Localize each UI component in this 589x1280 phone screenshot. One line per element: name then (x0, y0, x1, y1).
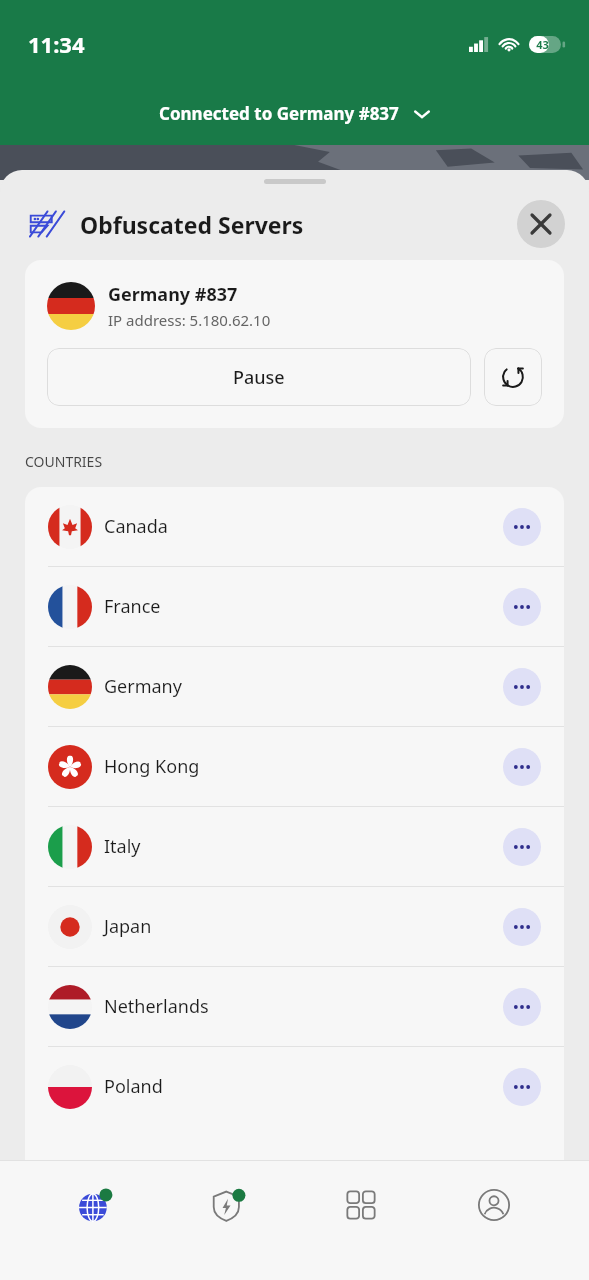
button[interactable]: More options for Hong Kong (503, 748, 541, 786)
staticText: Pause (233, 365, 285, 390)
staticText: Canada (104, 514, 168, 539)
button[interactable]: More options for Italy (503, 828, 541, 866)
button[interactable]: Tools (323, 1167, 399, 1243)
button[interactable]: More options for Canada (503, 508, 541, 546)
button[interactable]: Canada (25, 487, 564, 566)
button[interactable]: Italy (25, 807, 564, 886)
button[interactable]: Threat Protection (190, 1167, 266, 1243)
button[interactable]: Netherlands (25, 967, 564, 1046)
button[interactable]: Pause (47, 348, 471, 406)
staticText: Poland (104, 1074, 163, 1099)
staticText: Connected to Germany #837 (159, 102, 399, 125)
staticText: Germany #837 (108, 282, 238, 307)
button[interactable]: Reconnect (484, 348, 542, 406)
button[interactable]: Japan (25, 887, 564, 966)
button[interactable]: Close (517, 200, 565, 248)
button[interactable]: France (25, 567, 564, 646)
staticText: 43 (536, 37, 549, 52)
staticText: France (104, 594, 161, 619)
button[interactable]: More options for Germany (503, 668, 541, 706)
staticText: Netherlands (104, 994, 209, 1019)
staticText: IP address: 5.180.62.10 (108, 310, 271, 330)
button[interactable]: Profile (456, 1167, 532, 1243)
button[interactable]: Connected to Germany #837 (0, 102, 589, 125)
button[interactable]: More options for Poland (503, 1068, 541, 1106)
staticText: Japan (104, 914, 152, 939)
staticText: Obfuscated Servers (80, 209, 304, 240)
button[interactable]: Poland (25, 1047, 564, 1126)
staticText: Italy (104, 834, 141, 859)
staticText: Hong Kong (104, 754, 200, 779)
button[interactable]: Germany (25, 647, 564, 726)
button[interactable]: Hong Kong (25, 727, 564, 806)
button[interactable]: VPN (57, 1167, 133, 1243)
button[interactable]: More options for Japan (503, 908, 541, 946)
staticText: 11:34 (28, 29, 85, 59)
button[interactable]: More options for France (503, 588, 541, 626)
staticText: COUNTRIES (25, 452, 103, 471)
staticText: Germany (104, 674, 182, 699)
button[interactable]: More options for Netherlands (503, 988, 541, 1026)
